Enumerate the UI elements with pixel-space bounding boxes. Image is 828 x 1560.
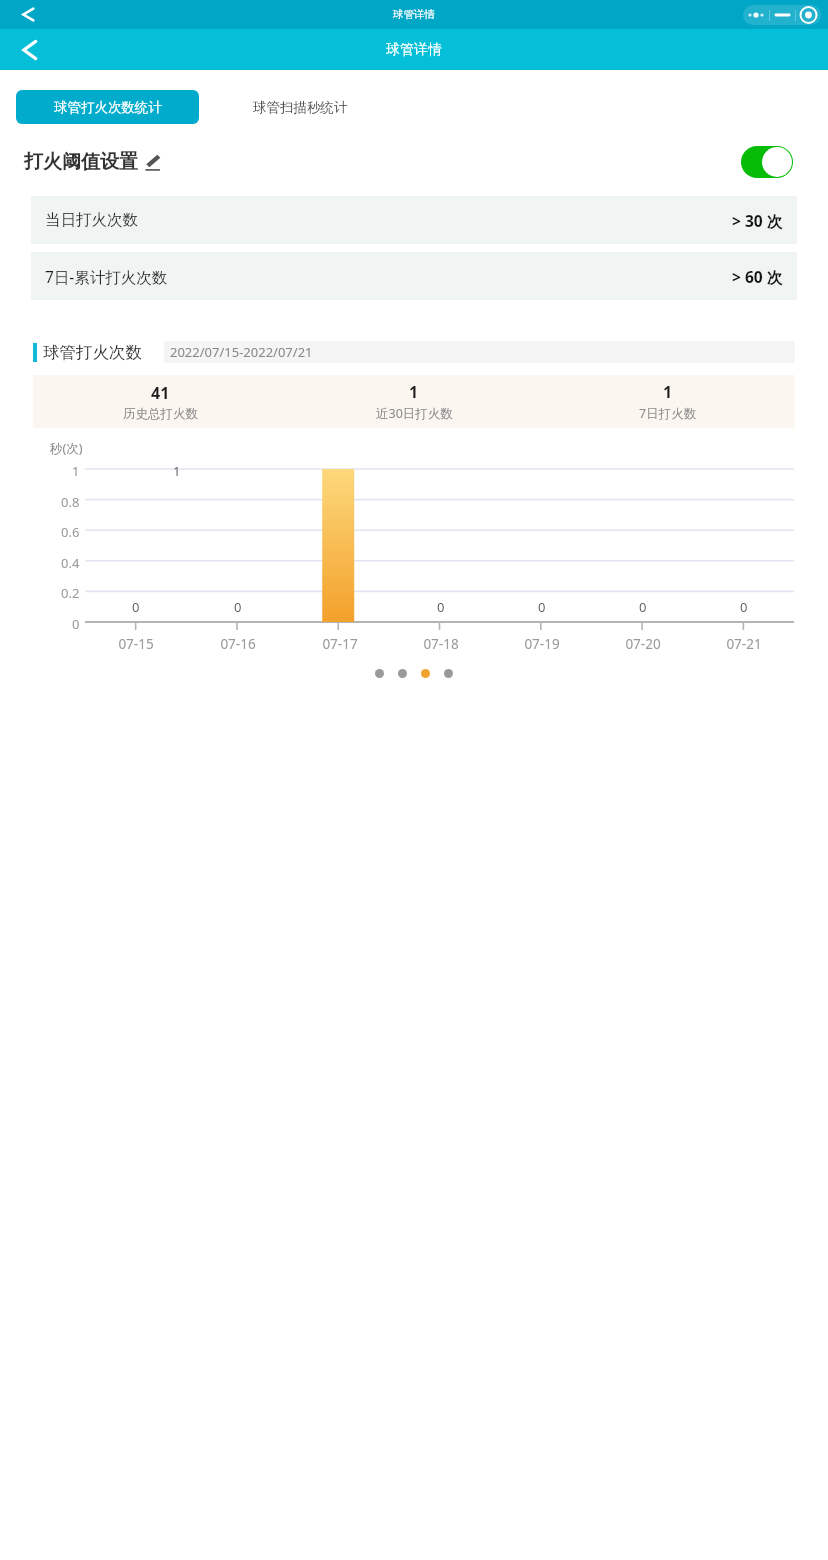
- staticText: 0.4: [61, 554, 80, 568]
- staticText: 1: [663, 381, 673, 403]
- button[interactable]: 页面指示: [398, 669, 407, 678]
- staticText: > 30 次: [732, 210, 783, 231]
- staticText: 7日打火数: [639, 405, 697, 422]
- button[interactable]: 页面指示: [421, 669, 430, 678]
- button[interactable]: 页面指示: [375, 669, 384, 678]
- staticText: 7日-累计打火次数: [45, 266, 168, 287]
- button[interactable]: 阈值开关: [741, 146, 793, 178]
- staticText: 历史总打火数: [123, 406, 198, 422]
- staticText: 球管详情: [386, 41, 442, 59]
- button[interactable]: 1: [287, 381, 541, 422]
- staticText: 2022/07/15-2022/07/21: [170, 343, 313, 361]
- staticText: 07-15: [118, 635, 154, 653]
- staticText: 当日打火次数: [45, 210, 138, 230]
- staticText: 球管详情: [393, 8, 435, 21]
- staticText: 1: [72, 462, 80, 476]
- staticText: 0: [72, 615, 80, 629]
- button[interactable]: 返回: [8, 32, 44, 68]
- staticText: 07-18: [423, 635, 459, 653]
- staticText: 0.8: [61, 493, 80, 507]
- button[interactable]: 当日打火次数: [31, 196, 797, 244]
- staticText: 0: [234, 598, 242, 616]
- staticText: 1: [409, 381, 419, 403]
- staticText: 07-21: [726, 635, 762, 653]
- button[interactable]: 最小化: [770, 5, 795, 25]
- button[interactable]: 编辑: [141, 151, 163, 173]
- staticText: 秒(次): [50, 440, 83, 457]
- button[interactable]: 7日-累计打火次数: [31, 252, 797, 300]
- staticText: 41: [151, 382, 170, 404]
- staticText: 1: [173, 462, 181, 480]
- staticText: 07-20: [625, 635, 661, 653]
- button[interactable]: 1: [541, 381, 795, 422]
- staticText: 0: [538, 598, 546, 616]
- staticText: 近30日打火数: [376, 405, 453, 422]
- staticText: 球管扫描秒统计: [253, 99, 348, 116]
- button[interactable]: 2022/07/15-2022/07/21: [164, 341, 795, 363]
- staticText: 球管打火次数: [43, 342, 142, 363]
- staticText: 0: [740, 598, 748, 616]
- staticText: 0: [132, 598, 140, 616]
- staticText: 07-16: [220, 635, 256, 653]
- button[interactable]: 关闭: [796, 5, 821, 25]
- button[interactable]: 41: [33, 382, 287, 422]
- staticText: 球管打火次数统计: [54, 99, 162, 116]
- staticText: 0: [437, 598, 445, 616]
- staticText: > 60 次: [732, 266, 783, 287]
- staticText: 0: [639, 598, 647, 616]
- button[interactable]: 球管打火次数统计: [16, 90, 199, 124]
- staticText: 07-17: [322, 635, 358, 653]
- staticText: 打火阈值设置: [24, 150, 138, 174]
- button[interactable]: 球管扫描秒统计: [253, 90, 348, 124]
- staticText: 0.2: [61, 584, 80, 598]
- button[interactable]: 返回: [9, 0, 41, 29]
- button[interactable]: 更多: [743, 5, 769, 25]
- staticText: 07-19: [524, 635, 560, 653]
- button[interactable]: 页面指示: [444, 669, 453, 678]
- staticText: 0.6: [61, 523, 80, 537]
